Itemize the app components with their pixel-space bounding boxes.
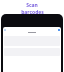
button[interactable]: Menu: [4, 29, 6, 31]
staticText: barcodes: [21, 9, 44, 16]
staticText: Scan: [26, 2, 38, 9]
